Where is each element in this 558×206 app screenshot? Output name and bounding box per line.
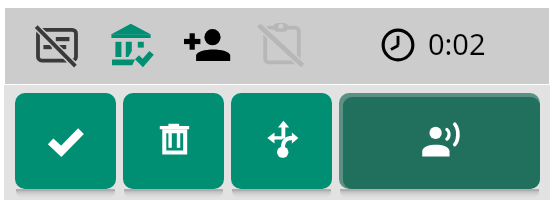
- button[interactable]: Move: [231, 93, 332, 189]
- button[interactable]: Voice: [339, 93, 540, 189]
- button[interactable]: Verified account: [107, 21, 155, 69]
- button[interactable]: Accept: [15, 93, 116, 189]
- button[interactable]: Notes off: [33, 21, 81, 69]
- button[interactable]: 0:02: [383, 30, 493, 76]
- staticText: 0:02: [428, 24, 486, 63]
- button[interactable]: Add person: [182, 21, 230, 69]
- button[interactable]: Delete: [123, 93, 224, 189]
- button[interactable]: Paste disabled: [258, 21, 306, 69]
